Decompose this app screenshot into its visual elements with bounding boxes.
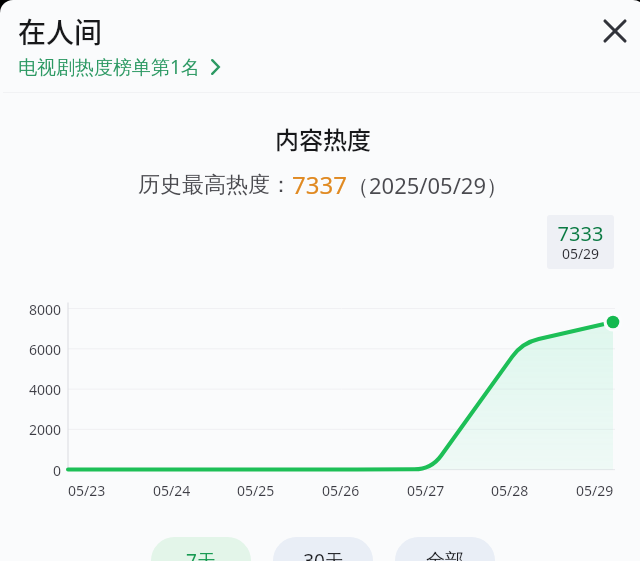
staticText: 历史最高热度：: [138, 171, 292, 199]
button[interactable]: 7天: [151, 537, 251, 561]
staticText: 6000: [28, 340, 61, 359]
staticText: 7333: [547, 220, 614, 247]
staticText: 05/23: [68, 481, 106, 500]
button[interactable]: 全部: [395, 537, 495, 561]
staticText: （2025/05/29）: [347, 170, 509, 200]
staticText: 05/27: [407, 481, 445, 500]
staticText: 0: [52, 461, 61, 480]
staticText: 7337: [292, 168, 347, 201]
staticText: 05/25: [237, 481, 275, 500]
staticText: 8000: [28, 300, 61, 319]
staticText: 05/29: [576, 481, 614, 500]
staticText: 内容热度: [275, 121, 371, 156]
staticText: 4000: [28, 380, 61, 399]
staticText: 30天: [303, 548, 344, 561]
staticText: 在人间: [18, 11, 103, 52]
button[interactable]: 30天: [273, 537, 373, 561]
button[interactable]: 电视剧热度榜单第1名: [18, 54, 220, 80]
staticText: 05/28: [491, 481, 529, 500]
staticText: 全部: [426, 549, 464, 561]
staticText: 7天: [186, 548, 216, 561]
staticText: 05/26: [322, 481, 360, 500]
staticText: 05/24: [153, 481, 191, 500]
staticText: 电视剧热度榜单第1名: [18, 54, 200, 80]
staticText: 2000: [28, 420, 61, 439]
staticText: 05/29: [547, 244, 614, 263]
button[interactable]: Close: [595, 11, 635, 51]
